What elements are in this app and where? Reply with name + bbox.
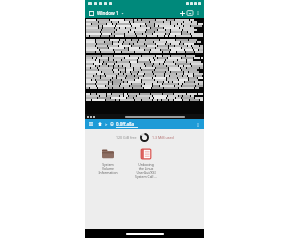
button[interactable]: New session (178, 9, 186, 17)
staticText: 1.3 MiB used (152, 135, 174, 140)
staticText: Window 1 (97, 10, 119, 16)
button[interactable]: Menu (88, 10, 94, 16)
button[interactable]: More options (194, 121, 201, 128)
button[interactable]: 0.0ff.a8a (116, 121, 194, 128)
button[interactable]: Home (97, 121, 103, 127)
button[interactable]: Window 1 (97, 10, 178, 16)
staticText: System Volume Information (98, 162, 118, 175)
staticText: 120 GiB free (116, 135, 137, 140)
staticText: > (105, 122, 108, 127)
button[interactable]: Unboxing the Linux UserGui/XSI System Ca… (133, 147, 159, 180)
button[interactable]: System Volume Information (95, 147, 121, 176)
button[interactable]: Keyboard (186, 9, 194, 17)
button[interactable]: More options (194, 9, 201, 16)
staticText: 0.0ff.a8a (116, 121, 134, 127)
button[interactable]: Navigation drawer (88, 121, 94, 127)
staticText: Unboxing the Linux UserGui/XSI System Ca… (135, 162, 157, 179)
